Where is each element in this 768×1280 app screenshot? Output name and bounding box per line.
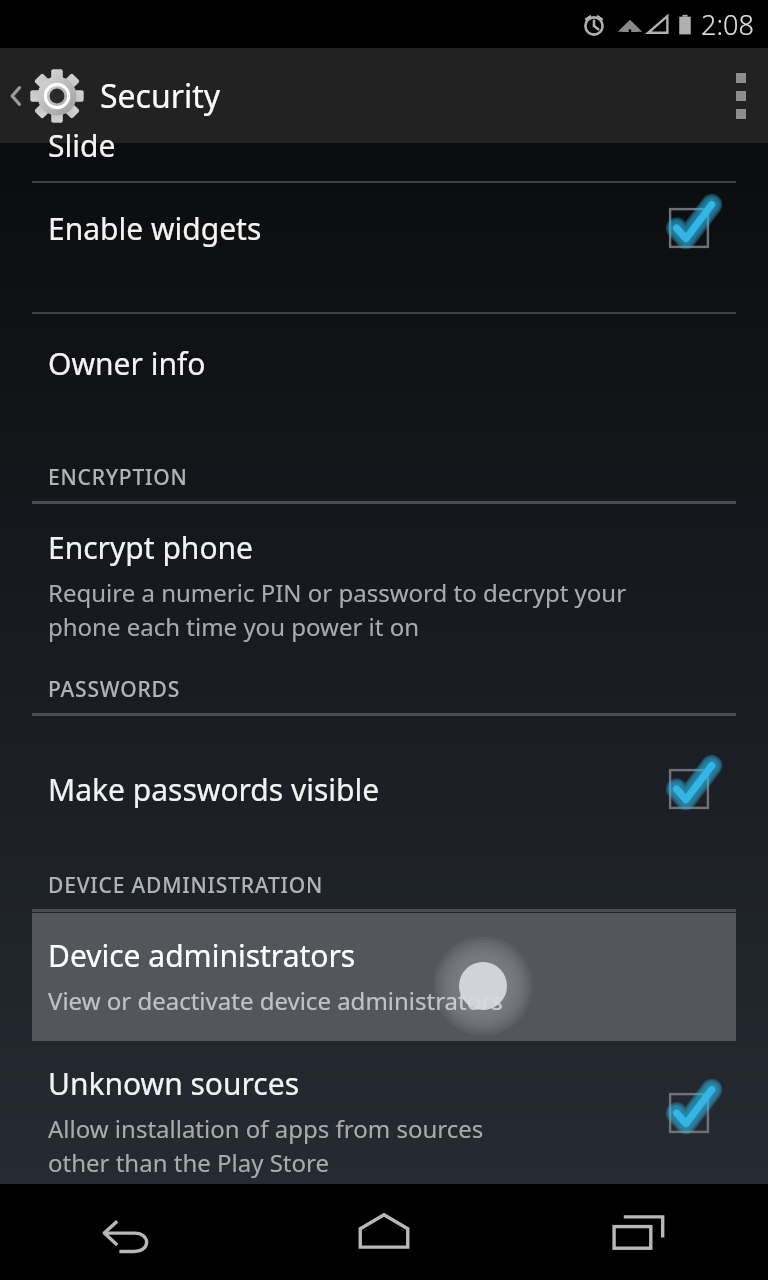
button[interactable]: Home bbox=[256, 1184, 512, 1280]
staticText: Unknown sources bbox=[48, 1063, 300, 1104]
staticText: Require a numeric PIN or password to dec… bbox=[48, 576, 627, 643]
staticText: Encrypt phone bbox=[48, 527, 253, 568]
staticText: Enable widgets bbox=[48, 208, 262, 249]
button[interactable]: Device administrators bbox=[32, 913, 736, 1041]
staticText: Allow installation of apps from sources … bbox=[48, 1112, 484, 1179]
staticText: Device administrators bbox=[48, 935, 356, 976]
staticText: Owner info bbox=[48, 343, 206, 384]
button[interactable]: Enable widgets bbox=[0, 182, 768, 274]
button[interactable]: More options bbox=[714, 53, 768, 139]
button[interactable]: Recent apps bbox=[512, 1184, 768, 1280]
staticText: Slide bbox=[48, 125, 116, 165]
staticText: Make passwords visible bbox=[48, 769, 380, 810]
staticText: PASSWORDS bbox=[48, 675, 181, 704]
button[interactable]: Slide bbox=[0, 143, 768, 183]
button[interactable]: Back bbox=[0, 1184, 256, 1280]
button[interactable]: Owner info bbox=[0, 313, 768, 413]
staticText: Security bbox=[100, 74, 221, 118]
staticText: ENCRYPTION bbox=[48, 463, 188, 492]
button[interactable]: Navigate up bbox=[0, 53, 233, 139]
button[interactable]: Make passwords visible bbox=[0, 743, 768, 835]
staticText: DEVICE ADMINISTRATION bbox=[48, 871, 324, 900]
staticText: View or deactivate device administrators bbox=[48, 984, 503, 1017]
button[interactable]: Encrypt phone bbox=[0, 513, 768, 665]
button[interactable]: Unknown sources bbox=[0, 1041, 768, 1184]
staticText: 2:08 bbox=[701, 6, 754, 43]
